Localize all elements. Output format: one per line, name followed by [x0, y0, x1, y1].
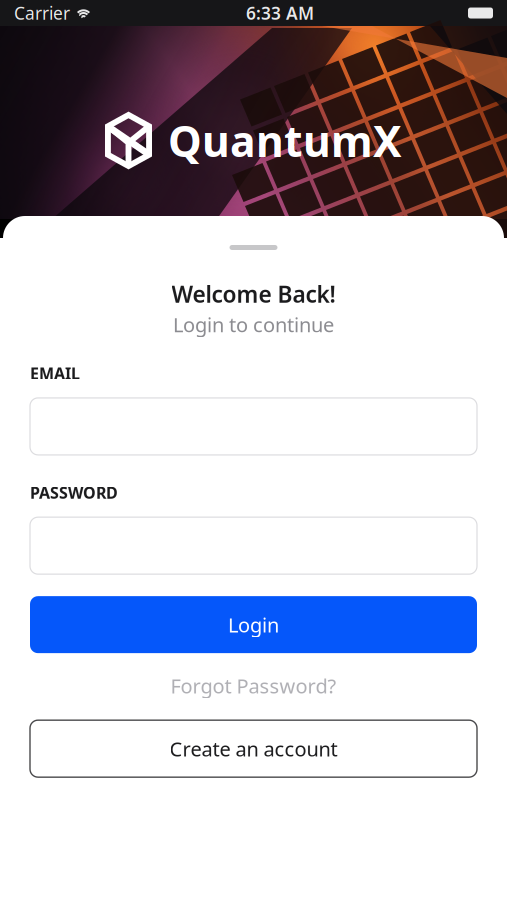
staticText: Carrier: [14, 1, 70, 24]
button[interactable]: Login: [30, 596, 477, 653]
staticText: EMAIL: [30, 363, 80, 384]
button[interactable]: Forgot Password?: [30, 673, 477, 698]
staticText: Login: [228, 611, 279, 638]
staticText: Create an account: [169, 735, 337, 762]
staticText: Login to continue: [173, 311, 334, 338]
staticText: QuantumX: [168, 112, 402, 169]
button[interactable]: Create an account: [30, 720, 477, 777]
staticText: Forgot Password?: [170, 672, 336, 699]
staticText: Welcome Back!: [171, 279, 335, 309]
staticText: PASSWORD: [30, 482, 118, 503]
staticText: 6:33 AM: [246, 1, 314, 24]
